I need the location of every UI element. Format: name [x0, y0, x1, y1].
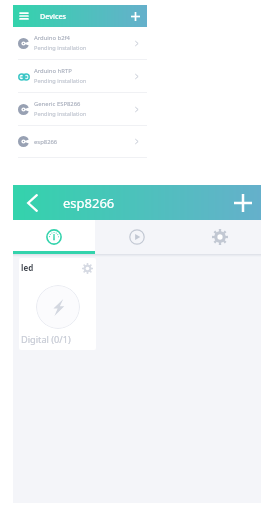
button[interactable]: Settings: [178, 220, 261, 254]
staticText: Digital (0/1): [21, 333, 71, 346]
staticText: Arduino b2f4: [34, 34, 70, 42]
staticText: esp8266: [34, 138, 58, 146]
button[interactable]: Arduino b2f4: [13, 27, 147, 59]
button[interactable]: Play: [95, 220, 178, 254]
button[interactable]: Widget settings: [81, 262, 94, 275]
button[interactable]: esp8266: [13, 126, 147, 157]
button[interactable]: led: [19, 258, 96, 350]
staticText: Generic ESP8266: [34, 100, 81, 108]
staticText: Pending installation: [34, 77, 87, 85]
staticText: led: [21, 262, 34, 273]
button[interactable]: Dashboard: [13, 220, 95, 254]
staticText: esp8266: [63, 194, 115, 212]
button[interactable]: Arduino hRTP: [13, 60, 147, 92]
staticText: Pending installation: [34, 44, 87, 52]
button[interactable]: Add device: [123, 5, 147, 27]
button[interactable]: Add: [225, 185, 261, 220]
button[interactable]: Generic ESP8266: [13, 93, 147, 125]
button[interactable]: Menu: [13, 5, 34, 27]
staticText: Arduino hRTP: [34, 67, 72, 75]
staticText: Devices: [40, 11, 67, 21]
staticText: Pending installation: [34, 110, 87, 118]
button[interactable]: Back: [13, 185, 51, 220]
button[interactable]: Toggle led: [36, 285, 80, 329]
